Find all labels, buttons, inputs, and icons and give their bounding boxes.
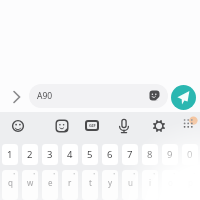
staticText: t: [89, 177, 92, 188]
button[interactable]: r: [62, 170, 78, 200]
button[interactable]: [180, 114, 198, 134]
staticText: e: [48, 177, 53, 188]
button[interactable]: 5: [82, 144, 98, 165]
button[interactable]: [149, 116, 169, 136]
staticText: y: [108, 177, 113, 188]
button[interactable]: u: [122, 170, 138, 200]
staticText: 5: [87, 148, 93, 161]
button[interactable]: 1: [2, 144, 18, 165]
button[interactable]: 8: [142, 144, 158, 165]
staticText: q: [8, 177, 13, 188]
button[interactable]: GIF: [85, 120, 99, 131]
staticText: 6: [107, 148, 113, 161]
button[interactable]: 6: [102, 144, 118, 165]
staticText: 0: [187, 148, 193, 161]
staticText: GIF: [89, 123, 96, 128]
button[interactable]: 9: [162, 144, 178, 165]
button[interactable]: [8, 116, 28, 136]
button[interactable]: t: [82, 170, 98, 200]
staticText: r: [68, 177, 72, 188]
staticText: 3: [47, 148, 53, 161]
button[interactable]: 0: [182, 144, 198, 165]
button[interactable]: A90: [29, 84, 168, 108]
staticText: 7: [127, 148, 133, 161]
staticText: 9: [167, 148, 173, 161]
button[interactable]: 2: [22, 144, 38, 165]
button[interactable]: 7: [122, 144, 138, 165]
staticText: w: [27, 177, 34, 188]
button[interactable]: [171, 85, 196, 110]
staticText: u: [128, 177, 133, 188]
staticText: 1: [7, 148, 13, 161]
staticText: A90: [37, 90, 53, 102]
staticText: i: [149, 177, 152, 188]
staticText: 2: [27, 148, 33, 161]
button[interactable]: q: [2, 170, 18, 200]
button[interactable]: 4: [62, 144, 78, 165]
staticText: 8: [147, 148, 153, 161]
staticText: 4: [67, 148, 73, 161]
button[interactable]: [52, 116, 72, 136]
button[interactable]: e: [42, 170, 58, 200]
button[interactable]: [114, 116, 134, 136]
button[interactable]: 3: [42, 144, 58, 165]
button[interactable]: y: [102, 170, 118, 200]
button[interactable]: w: [22, 170, 38, 200]
button[interactable]: [10, 89, 24, 105]
